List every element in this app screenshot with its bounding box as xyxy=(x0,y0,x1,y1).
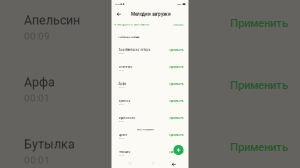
staticText: 00:04 xyxy=(118,52,123,55)
staticText: Арфа xyxy=(118,82,126,85)
button[interactable]: Применить xyxy=(224,134,294,160)
staticText: 00:09 xyxy=(24,30,50,42)
button[interactable]: Back xyxy=(171,162,174,165)
staticText: 00:01 xyxy=(118,86,123,89)
staticText: 00:03 xyxy=(118,137,123,140)
staticText: 100% xyxy=(177,3,182,5)
staticText: Тема установлена xyxy=(136,128,153,131)
staticText: Апельсин xyxy=(118,65,132,68)
staticText: Применить xyxy=(169,133,183,137)
staticText: Применить xyxy=(169,82,183,86)
button[interactable]: Применить xyxy=(167,64,184,70)
button[interactable]: Применить xyxy=(167,132,184,138)
button[interactable]: Применить xyxy=(224,10,294,36)
staticText: 00:02 xyxy=(118,154,123,157)
staticText: 10:24 xyxy=(114,3,119,5)
staticText: 00:05 xyxy=(118,120,123,123)
button[interactable]: Применить xyxy=(167,98,184,104)
staticText: 00:09 xyxy=(118,69,123,72)
staticText: Дрель xyxy=(118,133,127,136)
staticText: Мелодия по умолчанию xyxy=(117,23,149,26)
staticText: Бутылка xyxy=(118,99,130,102)
staticText: Применить xyxy=(169,150,183,154)
button[interactable]: Применить xyxy=(167,81,184,87)
staticText: Арфа xyxy=(24,75,55,89)
button[interactable]: Мелодия по умолчанию xyxy=(111,20,188,30)
staticText: 00:01 xyxy=(24,154,50,166)
button[interactable]: Применить xyxy=(167,115,184,121)
button[interactable]: Back xyxy=(116,12,121,17)
staticText: 00:01 xyxy=(118,103,123,106)
staticText: Применить xyxy=(172,23,183,26)
staticText: Применить xyxy=(230,16,288,30)
button[interactable]: Применить xyxy=(167,149,184,155)
staticText: Будильник xyxy=(118,116,135,119)
staticText: Применить xyxy=(169,99,183,103)
button[interactable]: Home xyxy=(148,159,157,168)
staticText: 00:01 xyxy=(24,92,50,104)
button[interactable]: Применить xyxy=(167,47,184,53)
staticText: Системные мелодии xyxy=(118,36,139,38)
staticText: Мелодии загрузки xyxy=(131,11,171,17)
staticText: Применить xyxy=(230,78,288,92)
staticText: Апельсин xyxy=(24,13,80,27)
staticText: Применить xyxy=(169,48,183,52)
staticText: Анастезийская гитара xyxy=(118,48,150,51)
staticText: Применить xyxy=(230,140,288,154)
button[interactable]: Recents xyxy=(125,159,134,168)
staticText: Применить xyxy=(169,65,183,69)
staticText: Летящая xyxy=(118,150,130,153)
staticText: Бутылка xyxy=(24,137,75,151)
button[interactable]: Применить xyxy=(224,72,294,98)
button[interactable]: Add ringtone xyxy=(173,145,183,155)
staticText: Применить xyxy=(169,116,183,120)
